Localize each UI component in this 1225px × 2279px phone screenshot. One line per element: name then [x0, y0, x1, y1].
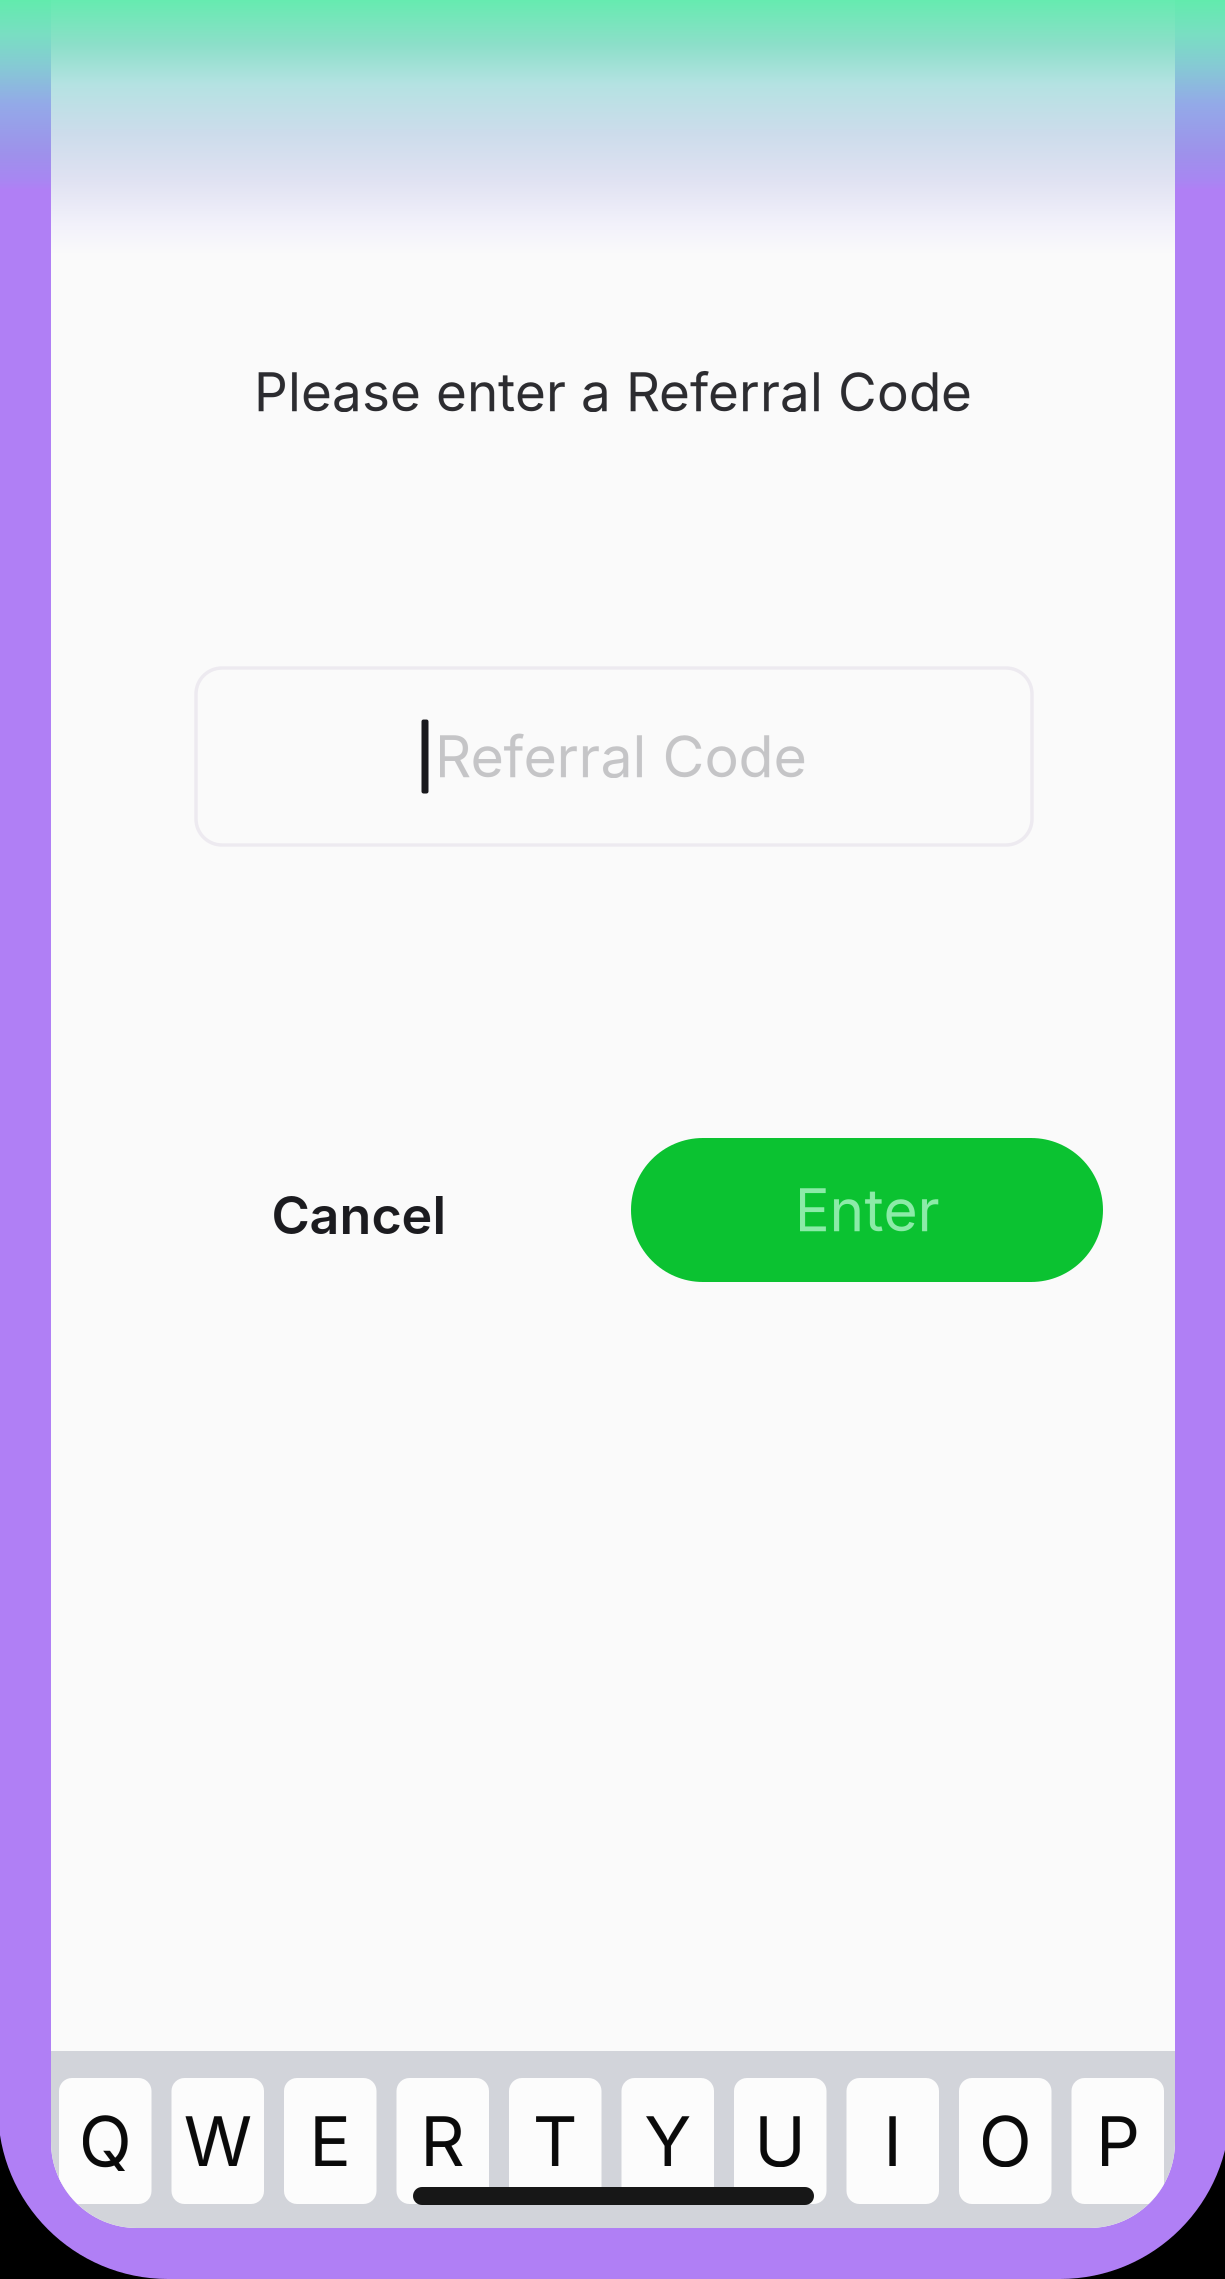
staticText: T	[533, 2099, 578, 2183]
staticText: Y	[644, 2099, 691, 2183]
button[interactable]: Cancel	[219, 1140, 499, 1290]
button[interactable]: P	[1071, 2078, 1164, 2204]
button[interactable]: E	[284, 2078, 376, 2204]
button[interactable]: Y	[621, 2078, 714, 2204]
staticText: Cancel	[271, 1183, 446, 1246]
button[interactable]: T	[509, 2078, 601, 2204]
staticText: O	[979, 2099, 1032, 2183]
button[interactable]: R	[396, 2078, 489, 2204]
staticText: Please enter a Referral Code	[254, 360, 972, 424]
button[interactable]: O	[959, 2078, 1051, 2204]
button[interactable]: W	[171, 2078, 264, 2204]
button[interactable]: Enter	[631, 1138, 1103, 1282]
staticText: Q	[79, 2099, 132, 2183]
button[interactable]: U	[734, 2078, 826, 2204]
staticText: U	[754, 2099, 806, 2183]
staticText: R	[420, 2099, 465, 2183]
staticText: I	[883, 2099, 902, 2183]
staticText: E	[309, 2099, 351, 2183]
button[interactable]: I	[846, 2078, 939, 2204]
button[interactable]: Q	[59, 2078, 151, 2204]
staticText: P	[1096, 2099, 1140, 2183]
staticText: W	[184, 2099, 252, 2183]
staticText: Enter	[794, 1174, 939, 1245]
staticText: Referral Code	[434, 722, 806, 791]
